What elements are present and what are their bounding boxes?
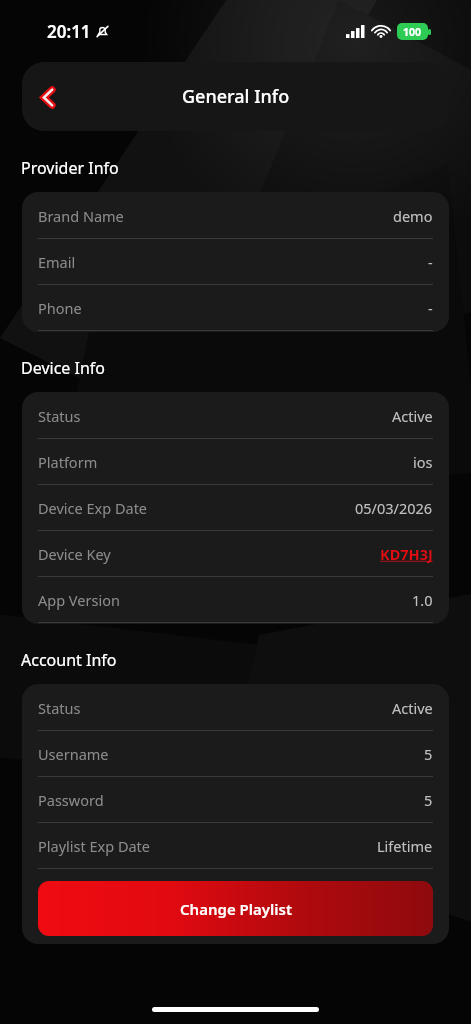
staticText: Phone [38, 298, 82, 318]
button[interactable]: Playlist Exp Date [38, 823, 433, 869]
staticText: 1.0 [412, 590, 433, 610]
staticText: Change Playlist [180, 899, 292, 919]
staticText: - [428, 298, 433, 318]
button[interactable]: Brand Name [38, 193, 433, 239]
staticText: Device Exp Date [38, 498, 148, 518]
staticText: - [428, 252, 433, 272]
staticText: Email [38, 252, 76, 272]
staticText: Platform [38, 452, 98, 472]
staticText: Lifetime [377, 836, 433, 856]
staticText: 5 [424, 744, 433, 764]
button[interactable]: App Version [38, 577, 433, 623]
staticText: 100 [403, 25, 422, 39]
staticText: Active [392, 406, 433, 426]
staticText: Device Info [21, 357, 106, 379]
staticText: 5 [424, 790, 433, 810]
staticText: Device Key [38, 544, 111, 564]
staticText: Brand Name [38, 206, 124, 226]
button[interactable]: Status [38, 393, 433, 439]
button[interactable]: Phone [38, 285, 433, 331]
staticText: Provider Info [21, 157, 119, 179]
staticText: Password [38, 790, 104, 810]
staticText: Playlist Exp Date [38, 836, 151, 856]
button[interactable]: Back [22, 71, 74, 123]
button[interactable]: Change Playlist [38, 881, 433, 936]
staticText: General Info [182, 84, 290, 109]
staticText: demo [393, 206, 433, 226]
staticText: Status [38, 406, 81, 426]
button[interactable]: Username [38, 731, 433, 777]
button[interactable]: Email [38, 239, 433, 285]
staticText: Active [392, 698, 433, 718]
staticText: App Version [38, 590, 120, 610]
staticText: KD7H3J [380, 544, 433, 564]
button[interactable]: Device Key [38, 531, 433, 577]
button[interactable]: Platform [38, 439, 433, 485]
button[interactable]: Status [38, 685, 433, 731]
staticText: Account Info [21, 649, 117, 671]
button[interactable]: Device Exp Date [38, 485, 433, 531]
button[interactable]: Password [38, 777, 433, 823]
staticText: ios [413, 452, 433, 472]
staticText: 05/03/2026 [355, 498, 433, 518]
staticText: Status [38, 698, 81, 718]
staticText: Username [38, 744, 109, 764]
staticText: 20:11 [47, 20, 91, 43]
